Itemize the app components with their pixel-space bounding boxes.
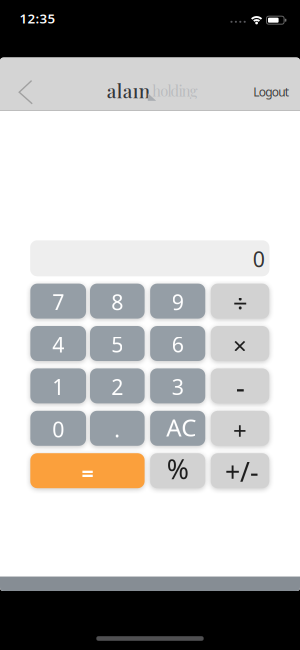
staticText: +/- [225,454,259,489]
staticText: 9 [172,288,184,316]
button[interactable]: Logout [249,81,293,103]
button[interactable]: Alain Holding [106,79,198,104]
staticText: Logout [253,84,289,100]
staticText: 0 [253,245,265,273]
button[interactable]: 8 [90,284,145,319]
staticText: + [233,415,247,446]
staticText: 2 [111,372,123,401]
staticText: 3 [172,372,184,401]
button[interactable]: AC [150,411,205,446]
staticText: = [81,458,93,487]
staticText: % [167,451,189,487]
staticText: 4 [52,330,64,358]
button[interactable]: 9 [150,284,205,319]
button[interactable]: % [150,453,205,488]
button[interactable]: 2 [90,368,145,403]
staticText: holding [152,80,198,100]
button[interactable]: 0 [30,411,86,446]
staticText: 0 [52,415,64,443]
staticText: ÷ [233,286,247,319]
button[interactable]: Back [17,78,34,106]
staticText: 5 [111,330,123,358]
staticText: 7 [52,288,64,316]
button[interactable]: - [211,368,269,403]
staticText: AC [166,411,196,443]
button[interactable]: ÷ [211,284,269,319]
button[interactable]: 5 [90,326,145,361]
button[interactable]: 6 [150,326,205,361]
button[interactable]: 4 [30,326,86,361]
staticText: 12:35 [19,9,55,27]
staticText: 8 [111,288,123,316]
button[interactable]: +/- [211,453,269,488]
staticText: 1 [52,372,64,401]
button[interactable]: + [211,411,269,446]
button[interactable]: × [211,326,269,361]
staticText: 6 [172,330,184,358]
staticText: - [235,368,244,407]
staticText: alaın [107,78,150,103]
staticText: . [114,415,120,443]
button[interactable]: 7 [30,284,86,319]
button[interactable]: . [90,411,145,446]
staticText: × [233,329,247,361]
button[interactable]: 1 [30,368,86,403]
button[interactable]: 3 [150,368,205,403]
button[interactable]: = [30,453,145,488]
